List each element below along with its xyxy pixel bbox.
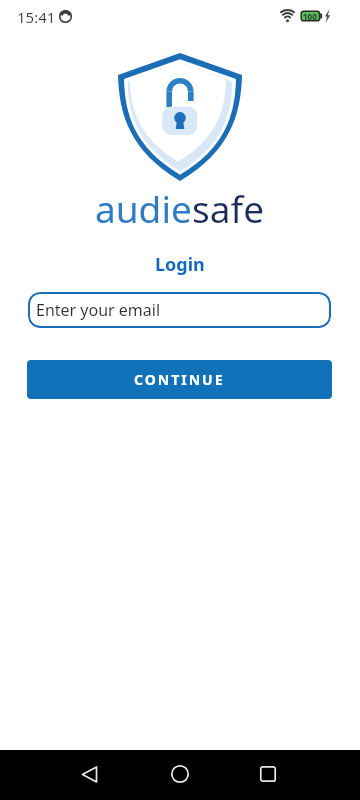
staticText: safe (192, 183, 265, 228)
button[interactable] (253, 759, 283, 789)
staticText: Login (155, 252, 205, 277)
staticText: 100 (303, 11, 317, 22)
staticText: 15:41 (17, 7, 56, 27)
button[interactable]: CONTINUE (27, 360, 332, 399)
button[interactable] (165, 759, 195, 789)
button[interactable] (74, 759, 104, 789)
staticText: audie (95, 183, 192, 228)
staticText: Enter your email (36, 299, 161, 321)
staticText: CONTINUE (134, 370, 225, 389)
button[interactable]: Enter your email (28, 292, 331, 328)
